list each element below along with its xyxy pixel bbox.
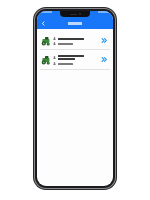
button[interactable]: Open details bbox=[99, 54, 110, 65]
button[interactable]: Open details bbox=[37, 50, 113, 69]
button[interactable]: Open details bbox=[37, 32, 113, 49]
button[interactable]: Open details bbox=[99, 35, 110, 46]
button[interactable]: Back bbox=[39, 19, 48, 28]
